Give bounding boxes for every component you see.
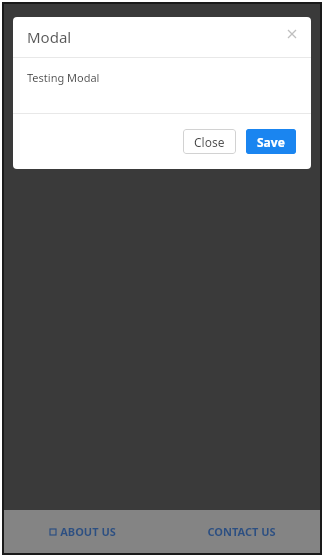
staticText: Testing Modal [27,70,100,85]
staticText: ABOUT US [60,524,116,539]
button[interactable]: Close dialog [281,23,303,45]
staticText: CONTACT US [207,524,276,539]
button[interactable]: Save [246,129,296,154]
button[interactable]: Close [183,129,236,154]
staticText: Modal [27,27,72,47]
button[interactable]: ABOUT US [4,510,162,553]
staticText: Close [194,134,225,150]
staticText: Save [257,134,285,150]
button[interactable]: CONTACT US [162,510,320,553]
